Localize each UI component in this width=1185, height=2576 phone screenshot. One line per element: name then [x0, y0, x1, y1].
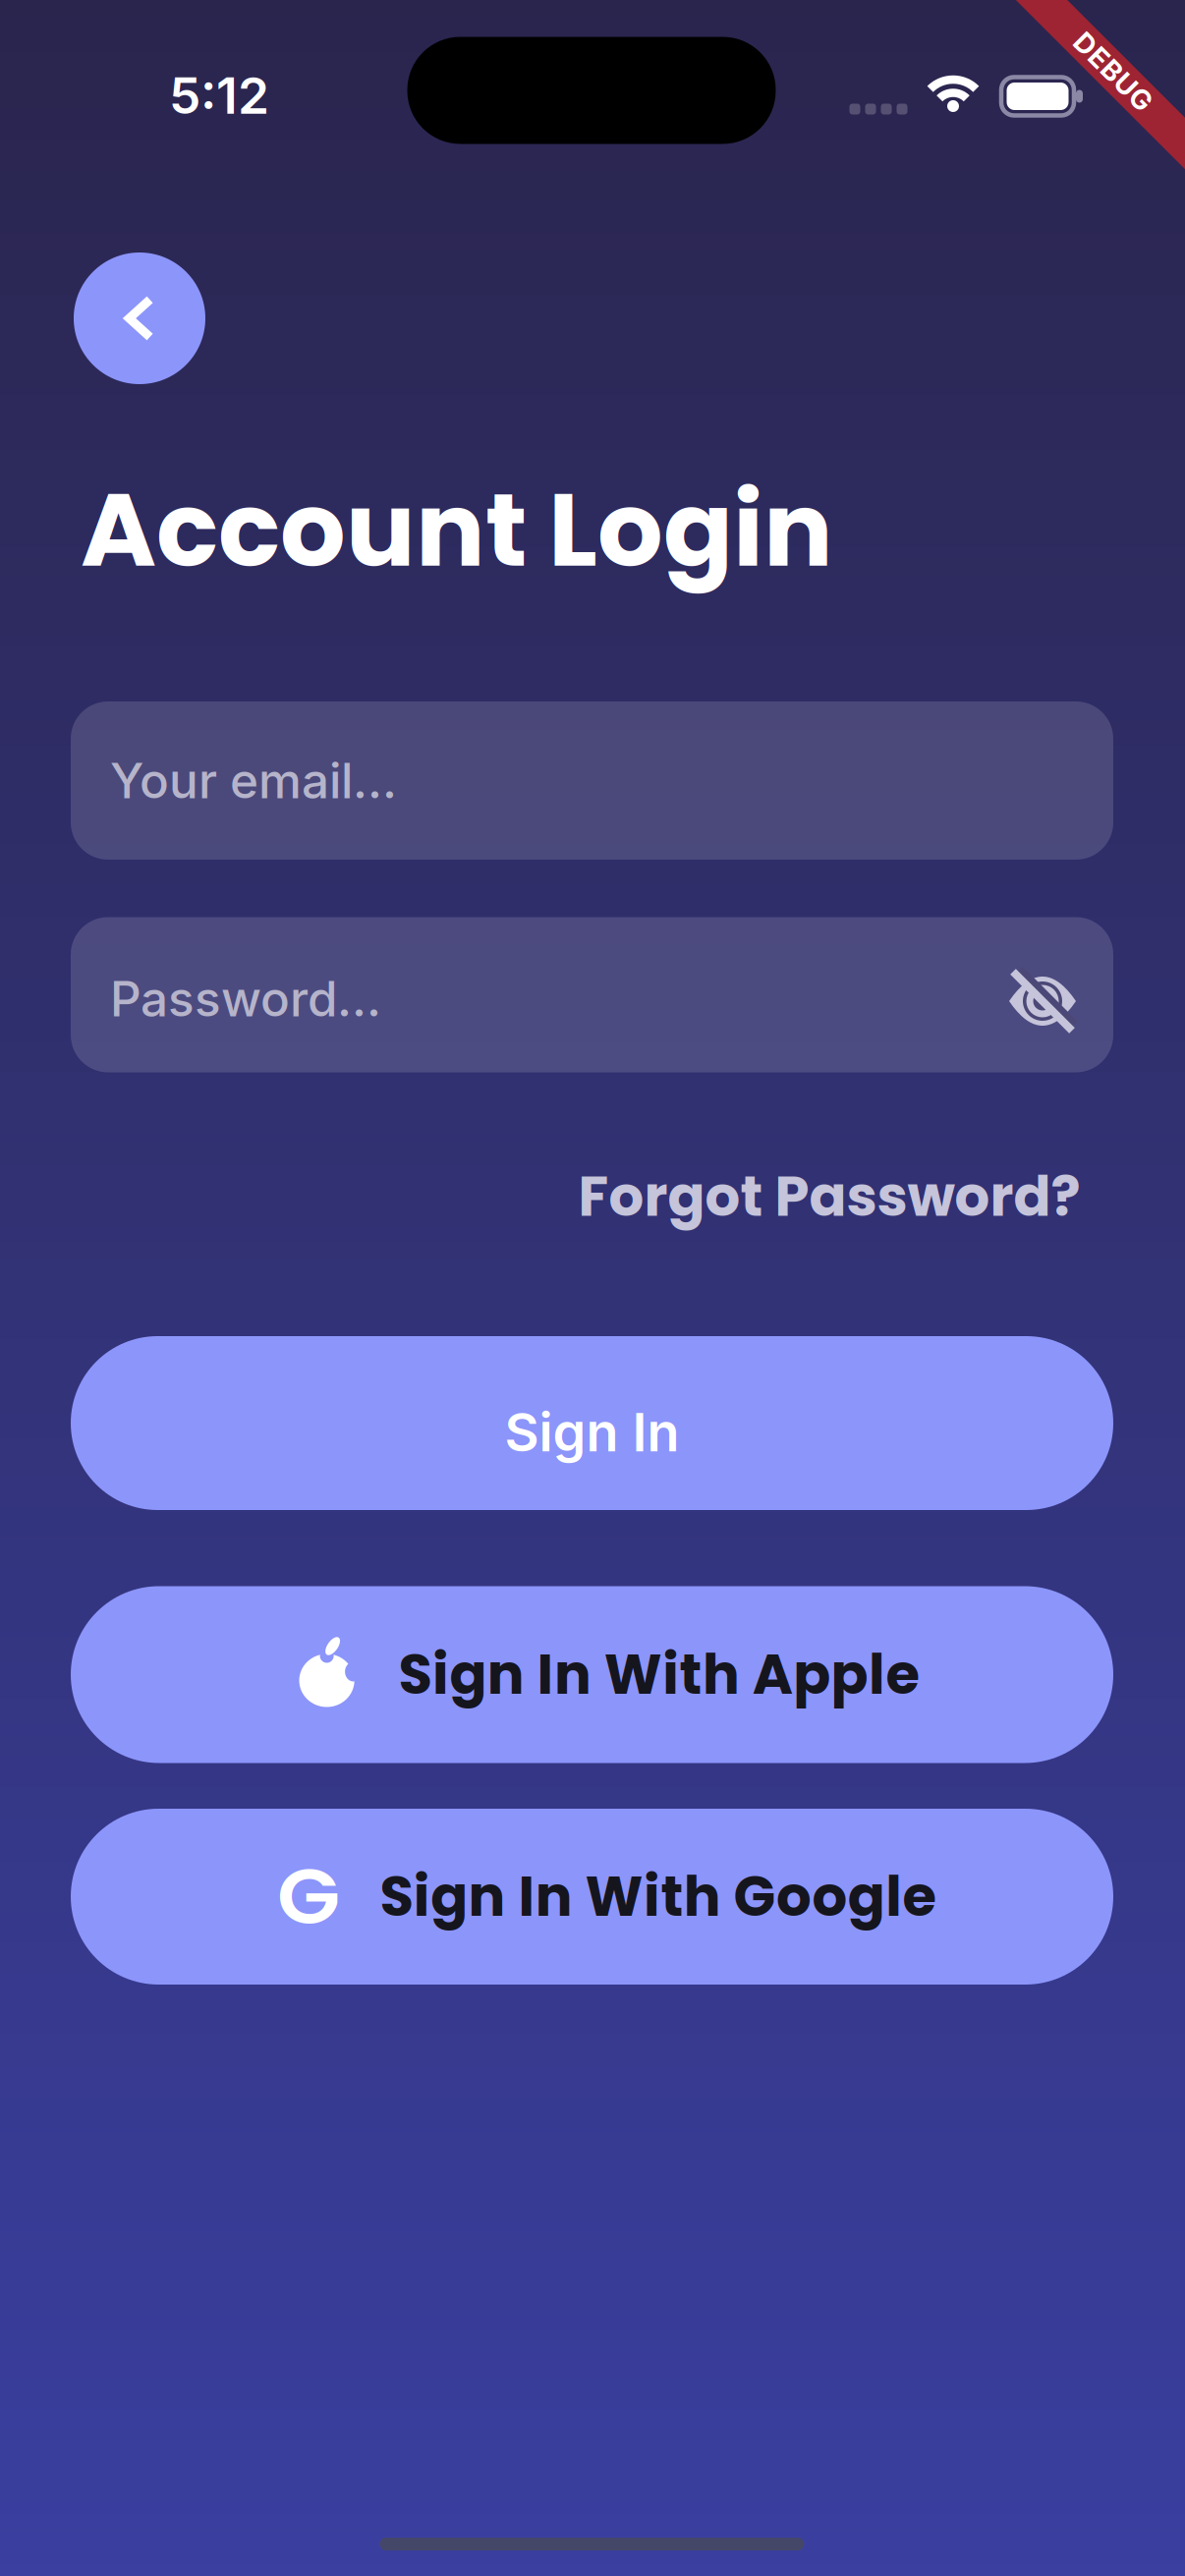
staticText: DEBUG [1064, 55, 1163, 88]
staticText: Password... [110, 969, 381, 1028]
staticText: Forgot Password? [578, 1158, 1080, 1235]
staticText: Your email... [110, 751, 397, 810]
staticText: Sign In With Apple [399, 1636, 919, 1713]
button[interactable]: G [71, 1809, 1113, 1985]
button[interactable]: Forgot Password? [578, 1158, 1080, 1235]
staticText: G [279, 1843, 337, 1950]
button[interactable]: Your email [71, 701, 1113, 860]
staticText: Sign In With Google [380, 1858, 936, 1935]
staticText: 5:12 [169, 65, 269, 126]
staticText: Account Login [81, 458, 833, 601]
button[interactable]: Sign In With Apple [71, 1586, 1113, 1763]
button[interactable]: Password [71, 917, 1113, 1072]
button[interactable]: Sign In [71, 1336, 1113, 1510]
button[interactable]: Show password [1009, 972, 1076, 1031]
button[interactable]: Back [74, 252, 205, 384]
staticText: Sign In [505, 1400, 679, 1464]
